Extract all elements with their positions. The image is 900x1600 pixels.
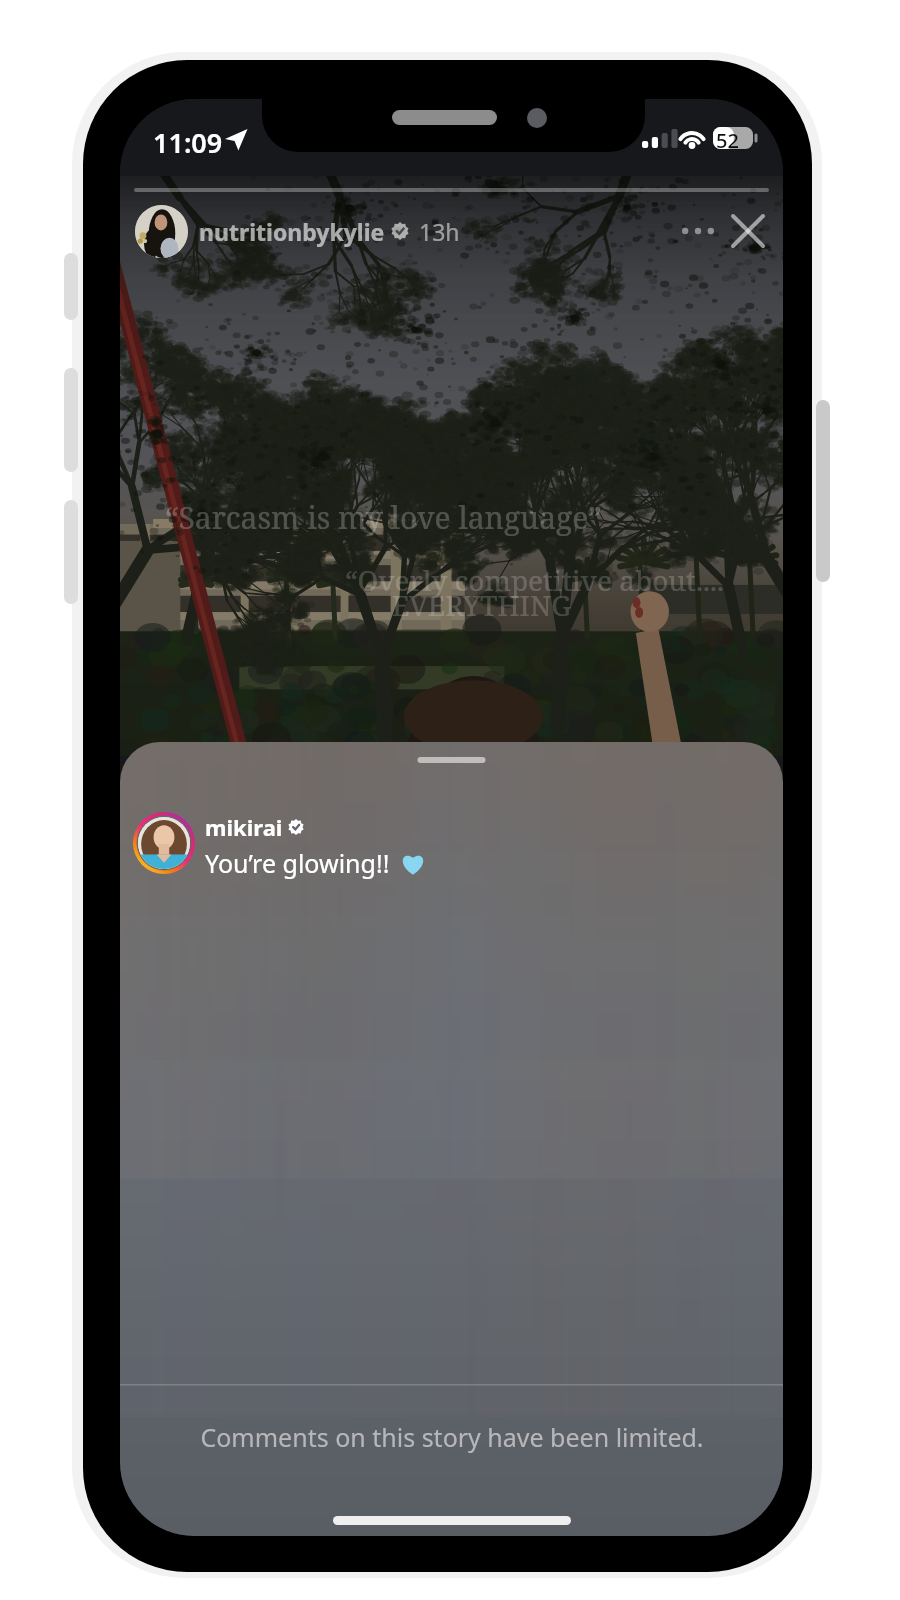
staticText: 52	[716, 127, 739, 154]
staticText: You’re glowing!!	[205, 846, 390, 880]
staticText: EVERYTHING	[392, 586, 572, 624]
staticText: nutritionbykylie	[199, 216, 385, 247]
staticText: 13h	[419, 216, 460, 247]
button[interactable]	[135, 205, 188, 258]
button[interactable]: mikirai	[133, 812, 765, 880]
staticText: Comments on this story have been limited…	[200, 1420, 704, 1454]
button[interactable]: More options	[675, 208, 721, 254]
staticText: mikirai	[205, 812, 283, 842]
staticText: 11:09	[153, 124, 223, 161]
staticText: “Overly competitive about....	[345, 561, 724, 599]
staticText: “Sarcasm is my love language”	[165, 497, 602, 538]
button[interactable]: Close	[723, 206, 773, 256]
